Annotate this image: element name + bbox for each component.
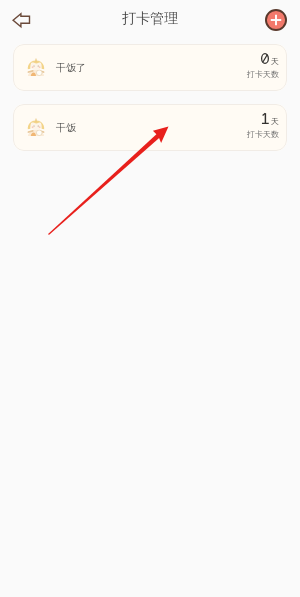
- staticText: 天: [271, 56, 279, 66]
- button[interactable]: 返回: [6, 5, 36, 35]
- staticText: 打卡天数: [247, 129, 279, 139]
- staticText: 干饭了: [56, 61, 86, 74]
- staticText: 打卡管理: [122, 10, 178, 28]
- button[interactable]: 干饭: [13, 104, 287, 151]
- staticText: 天: [271, 116, 279, 126]
- button[interactable]: 干饭了: [13, 44, 287, 91]
- staticText: 干饭: [56, 121, 76, 134]
- staticText: 打卡天数: [247, 69, 279, 79]
- button[interactable]: 添加打卡: [264, 8, 288, 32]
